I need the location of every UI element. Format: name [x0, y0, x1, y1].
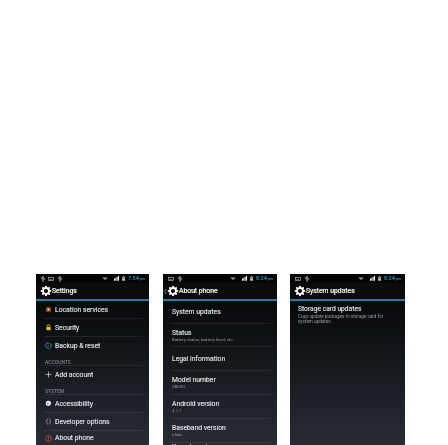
button[interactable]: Android version [163, 395, 277, 418]
button[interactable]: Kernel version [163, 443, 277, 445]
staticText: System updates [172, 308, 221, 316]
staticText: System updates [306, 287, 355, 295]
button[interactable]: Location services [36, 301, 149, 318]
button[interactable]: Settings [36, 283, 149, 299]
staticText: pm [396, 277, 402, 281]
staticText: Kernel version [172, 443, 215, 445]
staticText: Backup & reset [55, 342, 101, 350]
button[interactable]: Baseband version [163, 419, 277, 442]
button[interactable]: About phone [163, 283, 277, 299]
button[interactable]: Accessibility [36, 395, 149, 412]
staticText: Developer options [55, 418, 110, 426]
staticText: ACCOUNTS [45, 359, 71, 365]
staticText: 8:24 [256, 275, 267, 282]
staticText: Model number [172, 376, 216, 384]
button[interactable]: Storage card updates [290, 301, 405, 324]
button[interactable]: Security [36, 319, 149, 336]
button[interactable]: Backup & reset [36, 337, 149, 354]
button[interactable]: System updates [290, 283, 405, 299]
staticText: n5aa [172, 432, 182, 437]
staticText: Status [172, 329, 192, 337]
staticText: 8:24 [384, 275, 395, 282]
staticText: Legal information [172, 355, 226, 363]
staticText: pm [140, 277, 146, 281]
staticText: About phone [55, 434, 94, 442]
staticText: Storage card updates [298, 305, 362, 313]
button[interactable]: Legal information [163, 347, 277, 370]
staticText: Battery status, battery level, etc. [172, 337, 234, 342]
staticText: Security [55, 324, 80, 332]
staticText: pm [268, 277, 274, 281]
staticText: Location services [55, 306, 109, 314]
button[interactable]: Developer options [36, 413, 149, 430]
staticText: About phone [179, 287, 218, 295]
staticText: Copy update packages to storage card for… [298, 314, 392, 324]
staticText: SYSTEM [45, 388, 65, 394]
staticText: Add account [55, 371, 94, 379]
button[interactable]: Add account [36, 366, 149, 383]
staticText: 7:54 [128, 275, 139, 282]
button[interactable]: Model number [163, 371, 277, 394]
staticText: Settings [52, 287, 77, 295]
staticText: 4.1.1 [172, 408, 182, 413]
button[interactable]: Status [163, 324, 277, 346]
button[interactable]: About phone [36, 431, 149, 445]
button[interactable]: System updates [163, 301, 277, 323]
staticText: ZB60G [172, 384, 186, 389]
staticText: Android version [172, 400, 220, 408]
staticText: Accessibility [55, 400, 94, 408]
staticText: Baseband version [172, 424, 226, 432]
